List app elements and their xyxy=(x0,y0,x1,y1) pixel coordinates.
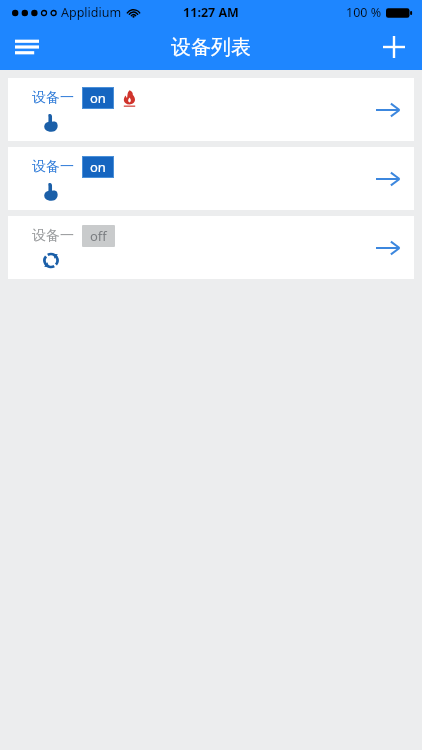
staticText: 设备列表 xyxy=(171,35,251,60)
staticText: 设备一 xyxy=(32,158,74,176)
staticText: 11:27 AM xyxy=(183,4,239,21)
button[interactable]: 设备一 xyxy=(8,216,414,279)
button[interactable]: Open device details xyxy=(362,84,414,136)
staticText: Applidium xyxy=(61,4,122,21)
button[interactable]: 设备一 xyxy=(8,78,414,141)
button[interactable]: 设备一 xyxy=(8,147,414,210)
button[interactable]: Open device details xyxy=(362,222,414,274)
staticText: 设备一 xyxy=(32,227,74,245)
staticText: off xyxy=(90,227,107,245)
button[interactable]: Open device details xyxy=(362,153,414,205)
staticText: 设备一 xyxy=(32,89,74,107)
button[interactable]: on xyxy=(90,158,106,176)
button[interactable]: Add device xyxy=(366,24,422,70)
staticText: on xyxy=(90,89,106,107)
button[interactable]: on xyxy=(90,89,106,107)
button[interactable]: Menu xyxy=(0,24,54,70)
button[interactable]: off xyxy=(90,227,107,245)
staticText: on xyxy=(90,158,106,176)
staticText: 100 % xyxy=(346,4,382,21)
